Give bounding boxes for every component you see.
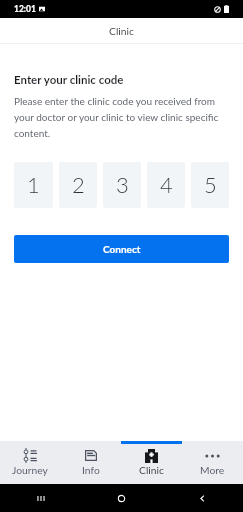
- staticText: 5: [204, 171, 217, 197]
- button[interactable]: Connect: [14, 235, 229, 263]
- button[interactable]: 5: [191, 162, 229, 208]
- staticText: 12:01: [14, 4, 36, 14]
- button[interactable]: 4: [147, 162, 185, 208]
- staticText: Connect: [103, 243, 141, 255]
- staticText: Clinic: [109, 25, 134, 37]
- staticText: 2: [72, 171, 85, 197]
- staticText: Enter your clinic code: [14, 73, 124, 87]
- staticText: 3: [116, 171, 129, 197]
- button[interactable]: 1: [14, 162, 53, 208]
- button[interactable]: More: [182, 441, 243, 484]
- button[interactable]: Info: [60, 441, 121, 484]
- button[interactable]: Back: [162, 484, 243, 512]
- button[interactable]: Journey: [0, 441, 60, 484]
- button[interactable]: 2: [59, 162, 97, 208]
- staticText: Info: [82, 464, 100, 476]
- staticText: Clinic: [139, 464, 164, 476]
- button[interactable]: Home: [81, 484, 162, 512]
- staticText: 4: [160, 171, 173, 197]
- staticText: 1: [27, 171, 40, 197]
- staticText: Please enter the clinic code you receive…: [14, 95, 229, 139]
- button[interactable]: Clinic: [121, 441, 182, 484]
- staticText: More: [200, 464, 225, 476]
- button[interactable]: 3: [103, 162, 141, 208]
- staticText: Journey: [12, 464, 48, 476]
- button[interactable]: Recent apps: [0, 484, 81, 512]
